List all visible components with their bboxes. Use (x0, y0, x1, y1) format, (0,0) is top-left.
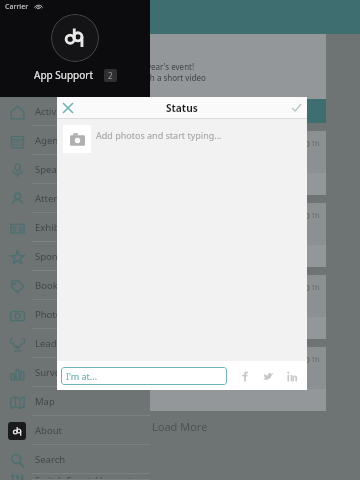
button[interactable]: Search (0, 445, 150, 474)
staticText: Attendees (35, 192, 81, 205)
button[interactable]: Twitter (261, 369, 275, 383)
staticText: Surveys (35, 366, 70, 379)
staticText: Search (35, 453, 66, 466)
button[interactable]: Speakers (0, 155, 150, 184)
button[interactable]: Sponsors (0, 242, 150, 271)
button[interactable]: Map (0, 387, 150, 416)
staticText: 1h (311, 283, 320, 293)
button[interactable]: Activity (0, 97, 150, 126)
staticText: Status (166, 101, 198, 115)
staticText: Exhibitors (35, 221, 80, 234)
button[interactable]: Submit (286, 97, 307, 118)
button[interactable]: Agenda (0, 126, 150, 155)
staticText: App Support (62, 139, 110, 150)
staticText: Sponsors (35, 250, 77, 263)
button[interactable]: Add photo (63, 125, 91, 153)
staticText: Load More (152, 419, 208, 434)
staticText: Switch Event / Logout (35, 474, 132, 480)
button[interactable]: Your Video Guide (34, 99, 326, 123)
button[interactable]: App Support (34, 203, 326, 267)
staticText: 2 (108, 70, 113, 81)
button[interactable]: Close (57, 97, 78, 118)
staticText: App Support (62, 355, 110, 366)
button[interactable]: App Support (34, 131, 326, 195)
staticText: Carrier (5, 2, 29, 12)
button[interactable]: Exhibitors (0, 213, 150, 242)
button[interactable]: Facebook (237, 369, 251, 383)
staticText: Add photos and start typing... (96, 129, 222, 141)
staticText: 1h (311, 211, 320, 221)
button[interactable]: Switch Event / Logout (0, 474, 150, 480)
staticText: I'm at... (66, 370, 98, 382)
staticText: Welcome to the app for this year's event… (41, 61, 206, 94)
staticText: App Support (34, 68, 94, 82)
staticText: About (35, 424, 62, 437)
staticText: Your Video Guide (140, 104, 221, 118)
staticText: Agenda (35, 134, 70, 147)
staticText: Map (35, 395, 55, 408)
button[interactable]: Leaderboard (0, 329, 150, 358)
staticText: Leaderboard (35, 337, 93, 350)
staticText: Speakers (35, 163, 76, 176)
staticText: Bookmarks (35, 279, 86, 292)
button[interactable]: App Support (34, 347, 326, 411)
button[interactable]: LinkedIn (285, 369, 299, 383)
button[interactable]: App Support (34, 275, 326, 339)
button[interactable]: I'm at... (61, 367, 227, 385)
button[interactable]: Bookmarks (0, 271, 150, 300)
staticText: Activity (35, 105, 68, 118)
button[interactable]: Attendees (0, 184, 150, 213)
button[interactable]: Photos (0, 300, 150, 329)
staticText: Promoted Post (40, 40, 89, 50)
staticText: 1h (311, 139, 320, 149)
staticText: Photos (35, 308, 67, 321)
button[interactable]: About (0, 416, 150, 445)
button[interactable]: Surveys (0, 358, 150, 387)
staticText: 1h (311, 355, 320, 365)
